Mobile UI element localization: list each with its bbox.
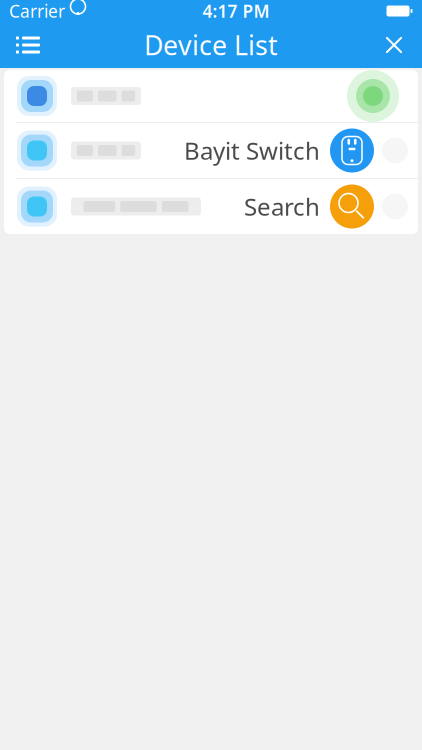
staticText: Carrier [9,0,65,22]
button[interactable]: Close [366,22,422,68]
button[interactable]: Bayit Switch [4,123,418,178]
button[interactable]: Menu [0,22,56,68]
staticText: 4:17 PM [202,0,269,22]
button[interactable] [4,70,418,122]
button[interactable]: Search [4,179,418,234]
staticText: Search [244,191,320,222]
staticText: Bayit Switch [184,135,320,166]
staticText: Device List [144,27,278,63]
